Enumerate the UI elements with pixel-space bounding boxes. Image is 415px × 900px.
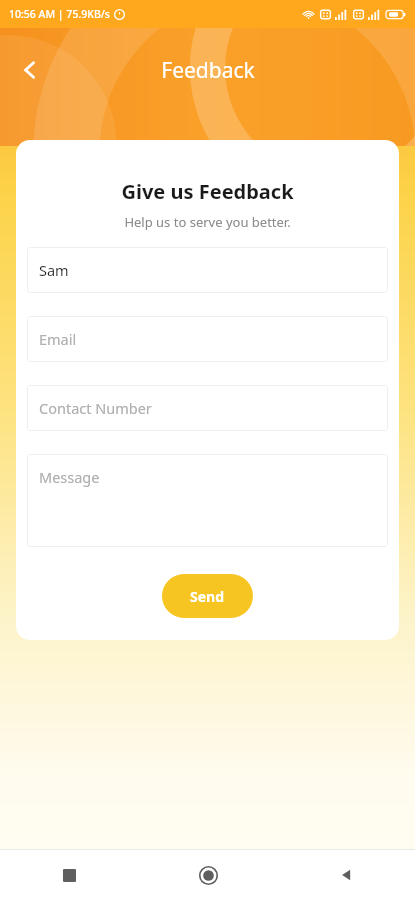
staticText: Message (39, 467, 100, 487)
button[interactable]: Back (10, 50, 50, 90)
button[interactable]: Send (162, 574, 253, 618)
button[interactable]: Recent apps (0, 850, 139, 900)
staticText: Email (39, 329, 77, 349)
button[interactable]: Back (277, 850, 415, 900)
staticText: Give us Feedback (16, 178, 399, 205)
staticText: Send (190, 587, 225, 606)
staticText: Help us to serve you better. (16, 213, 399, 231)
staticText: Feedback (161, 56, 255, 85)
button[interactable]: Email (27, 316, 388, 362)
staticText: Contact Number (39, 398, 152, 418)
button[interactable]: Contact Number (27, 385, 388, 431)
button[interactable]: Message (27, 454, 388, 547)
staticText: 10:56 AM | 75.9KB/s (9, 7, 110, 21)
button[interactable]: Sam (27, 247, 388, 293)
button[interactable]: Home (139, 850, 277, 900)
staticText: Sam (39, 260, 69, 280)
